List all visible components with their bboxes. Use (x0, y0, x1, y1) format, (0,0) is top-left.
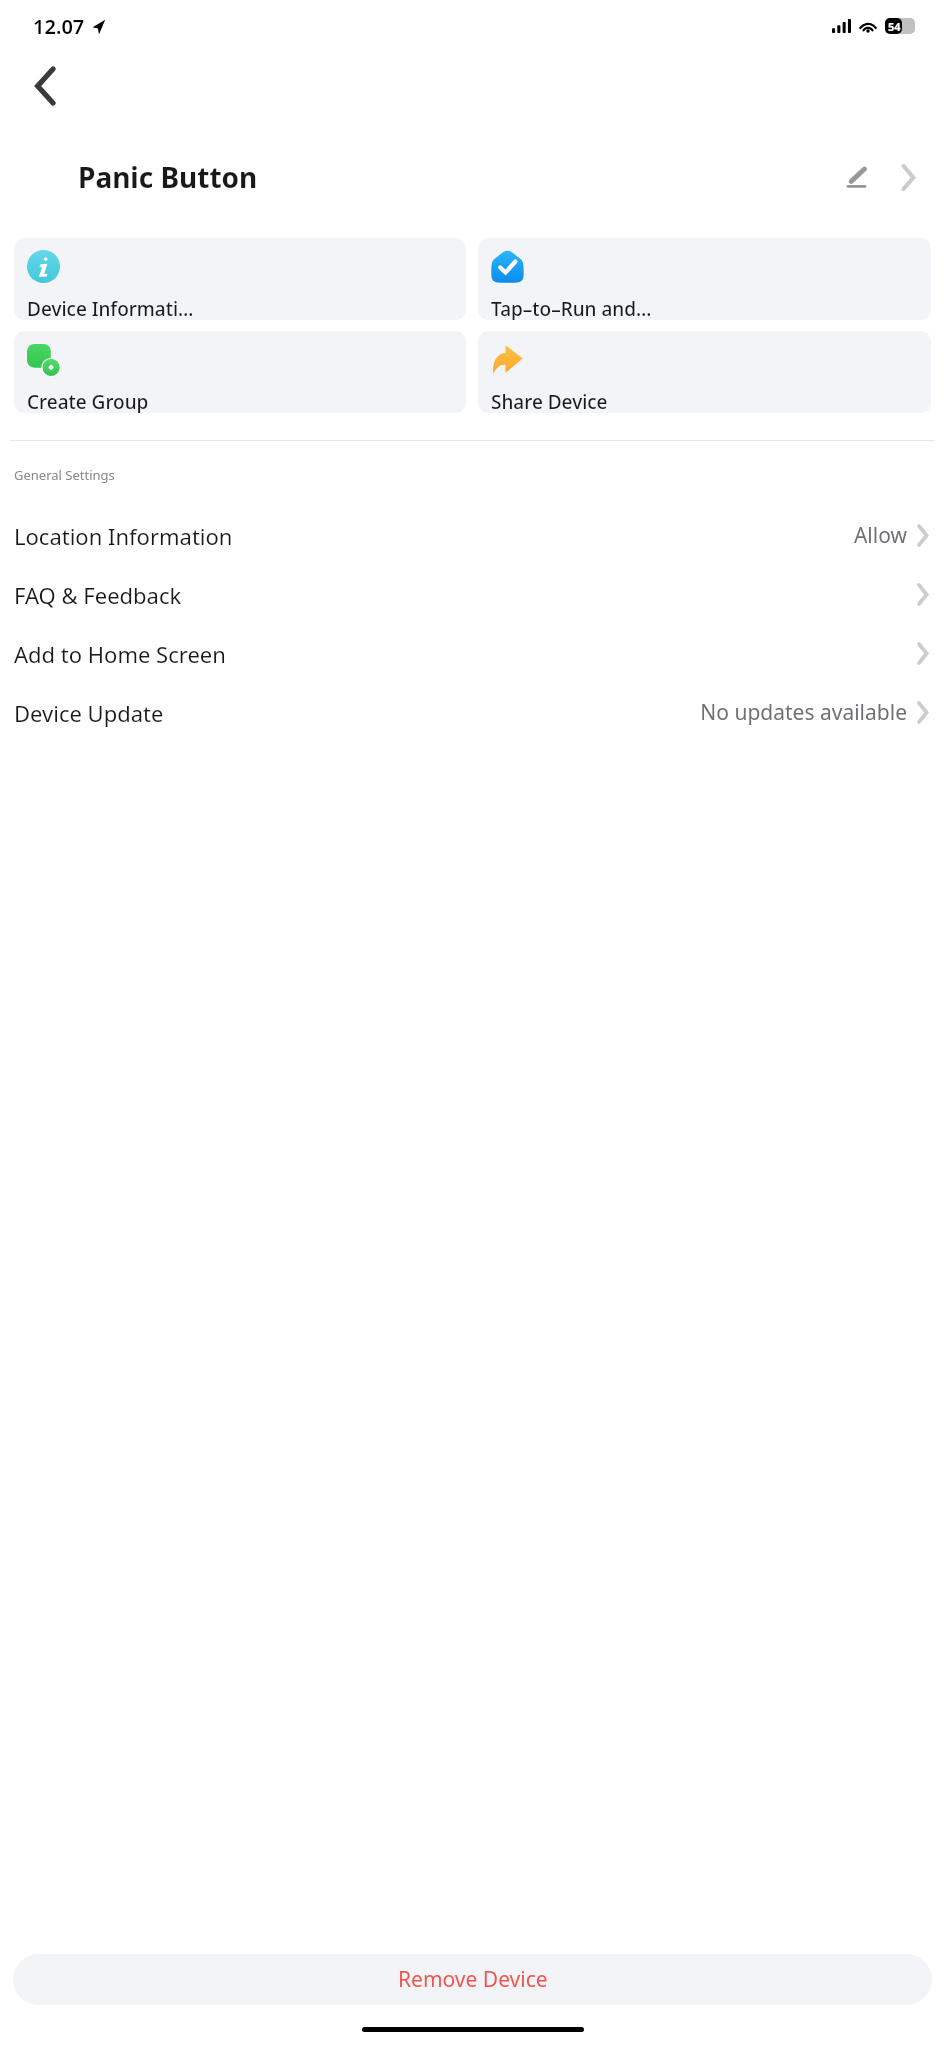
staticText: Share Device (491, 389, 608, 413)
staticText: Panic Button (78, 158, 258, 196)
button[interactable]: Tap–to–Run and… (478, 238, 931, 320)
button[interactable]: Rename device (833, 154, 879, 200)
staticText: Remove Device (398, 1965, 548, 1994)
staticText: Add to Home Screen (14, 639, 226, 669)
staticText: Tap–to–Run and… (491, 296, 652, 320)
staticText: Device Informati… (27, 296, 194, 320)
staticText: 54 (888, 19, 901, 34)
staticText: Device Update (14, 698, 164, 728)
button[interactable]: Device Informati… (14, 238, 466, 320)
button[interactable]: Back (20, 60, 72, 112)
button[interactable]: Create Group (14, 331, 466, 413)
staticText: Create Group (27, 389, 149, 413)
button[interactable]: Share Device (478, 331, 931, 413)
button[interactable]: Device Update (0, 683, 945, 742)
staticText: Location Information (14, 521, 233, 551)
staticText: Allow (853, 521, 907, 550)
staticText: 12.07 (33, 13, 85, 40)
button[interactable]: Device details (887, 156, 929, 198)
staticText: FAQ & Feedback (14, 580, 182, 610)
button[interactable]: Remove Device (13, 1954, 932, 2005)
button[interactable]: Add to Home Screen (0, 624, 945, 683)
button[interactable]: Location Information (0, 506, 945, 565)
staticText: No updates available (700, 698, 907, 727)
staticText: General Settings (14, 466, 115, 484)
button[interactable]: FAQ & Feedback (0, 565, 945, 624)
